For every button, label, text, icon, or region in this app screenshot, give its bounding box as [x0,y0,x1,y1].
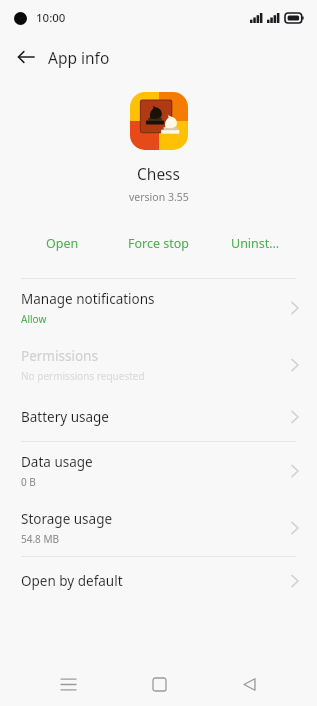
button[interactable]: Manage notifications [0,279,317,336]
button[interactable]: Open by default [0,557,317,605]
staticText: Manage notifications [21,290,155,308]
button[interactable]: Storage usage [0,499,317,556]
button[interactable]: Home [136,662,182,706]
button[interactable]: Battery usage [0,393,317,441]
button[interactable]: Recent apps [45,662,91,706]
button[interactable]: Uninst… [207,226,303,260]
button[interactable]: Open [14,226,111,260]
staticText: Battery usage [21,408,109,426]
staticText: 54.8 MB [21,532,60,546]
staticText: Force stop [128,235,190,252]
staticText: Chess [137,163,180,184]
button[interactable]: Back [10,41,42,73]
staticText: No permissions requested [21,369,145,383]
staticText: Permissions [21,347,98,365]
button[interactable]: Force stop [111,226,207,260]
button[interactable]: Data usage [0,442,317,499]
staticText: Open by default [21,572,123,590]
staticText: Uninst… [231,235,280,252]
staticText: 10:00 [36,10,66,26]
staticText: Open [46,235,79,252]
button[interactable]: Back [226,662,272,706]
button[interactable]: Permissions [0,336,317,393]
staticText: version 3.55 [129,190,189,204]
staticText: 0 B [21,475,36,489]
staticText: App info [48,47,110,68]
staticText: Allow [21,312,47,326]
staticText: Data usage [21,453,93,471]
staticText: Storage usage [21,510,113,528]
